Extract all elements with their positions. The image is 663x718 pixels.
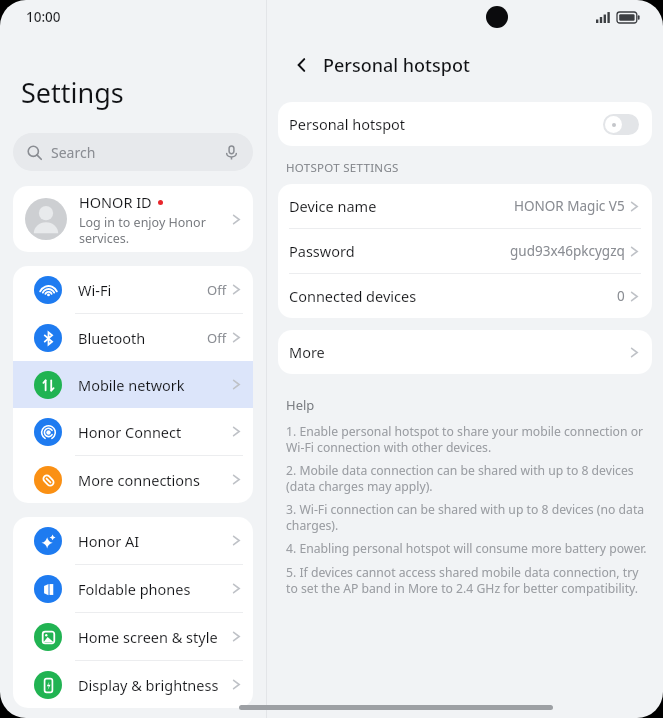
staticText: Off bbox=[207, 281, 227, 299]
staticText: Device name bbox=[289, 196, 377, 216]
staticText: 4. Enabling personal hotspot will consum… bbox=[286, 540, 647, 557]
staticText: HONOR Magic V5 bbox=[514, 197, 625, 215]
staticText: Personal hotspot bbox=[323, 53, 470, 78]
staticText: 2. Mobile data connection can be shared … bbox=[286, 462, 649, 494]
staticText: HOTSPOT SETTINGS bbox=[286, 160, 399, 176]
staticText: Off bbox=[207, 329, 227, 347]
button[interactable]: Personal hotspot bbox=[278, 102, 652, 146]
staticText: Settings bbox=[21, 74, 124, 111]
staticText: More connections bbox=[78, 470, 201, 490]
button[interactable]: Mobile network bbox=[13, 361, 253, 408]
staticText: Log in to enjoy Honor services. bbox=[79, 214, 206, 246]
staticText: Honor Connect bbox=[78, 422, 182, 442]
staticText: 1. Enable personal hotspot to share your… bbox=[286, 423, 649, 455]
staticText: Foldable phones bbox=[78, 579, 191, 599]
staticText: Home screen & style bbox=[78, 627, 218, 647]
button[interactable]: Foldable phones bbox=[13, 565, 253, 612]
staticText: 3. Wi-Fi connection can be shared with u… bbox=[286, 501, 649, 533]
button[interactable]: Bluetooth bbox=[13, 314, 253, 361]
staticText: More bbox=[289, 342, 325, 362]
staticText: 10:00 bbox=[26, 8, 61, 26]
staticText: Mobile network bbox=[78, 375, 185, 395]
staticText: Search bbox=[51, 143, 96, 162]
button[interactable]: Search bbox=[13, 133, 253, 171]
button[interactable]: Display & brightness bbox=[13, 661, 253, 708]
staticText: Display & brightness bbox=[78, 675, 219, 695]
staticText: Connected devices bbox=[289, 286, 417, 306]
staticText: Help bbox=[286, 396, 315, 414]
button[interactable]: HONOR ID bbox=[13, 186, 253, 252]
staticText: Bluetooth bbox=[78, 328, 146, 348]
button[interactable]: Wi-Fi bbox=[13, 266, 253, 313]
button[interactable]: Honor AI bbox=[13, 517, 253, 564]
staticText: Password bbox=[289, 241, 355, 261]
button[interactable]: More bbox=[278, 330, 652, 374]
staticText: Personal hotspot bbox=[289, 114, 406, 134]
button[interactable]: More connections bbox=[13, 456, 253, 503]
staticText: HONOR ID bbox=[79, 192, 152, 212]
button[interactable]: Home screen & style bbox=[13, 613, 253, 660]
button[interactable]: Connected devices bbox=[278, 274, 652, 318]
staticText: gud93x46pkcygzq bbox=[510, 242, 625, 260]
staticText: 5. If devices cannot access shared mobil… bbox=[286, 564, 649, 596]
staticText: 0 bbox=[617, 287, 625, 305]
button[interactable]: Device name bbox=[278, 184, 652, 228]
button[interactable]: Back bbox=[287, 50, 317, 80]
button[interactable]: Honor Connect bbox=[13, 408, 253, 455]
staticText: Honor AI bbox=[78, 531, 140, 551]
button[interactable]: Password bbox=[278, 229, 652, 273]
staticText: Wi-Fi bbox=[78, 280, 112, 300]
